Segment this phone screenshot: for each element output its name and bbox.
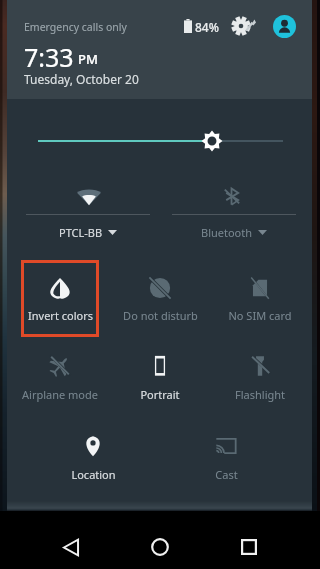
button[interactable] xyxy=(221,338,299,415)
button[interactable] xyxy=(54,418,132,495)
staticText: No SIM card xyxy=(228,308,292,323)
button[interactable]: Bluetooth xyxy=(172,175,296,243)
staticText: Do not disturb xyxy=(123,308,198,323)
staticText: Tuesday, October 20 xyxy=(24,71,139,87)
button[interactable]: Settings xyxy=(227,13,261,39)
staticText: 84% xyxy=(195,19,219,35)
staticText: PTCL-BB xyxy=(59,225,103,240)
button[interactable] xyxy=(121,260,199,337)
staticText: 7:33 xyxy=(24,40,74,74)
button[interactable] xyxy=(24,263,96,334)
button[interactable] xyxy=(187,418,265,495)
button[interactable]: PTCL-BB xyxy=(26,175,150,243)
button[interactable] xyxy=(121,338,199,415)
staticText: Airplane mode xyxy=(22,387,98,402)
staticText: Bluetooth xyxy=(201,225,253,240)
button[interactable] xyxy=(21,338,99,415)
button[interactable]: Brightness xyxy=(31,128,288,154)
staticText: Invert colors xyxy=(28,308,93,323)
staticText: Emergency calls only xyxy=(24,20,127,34)
staticText: Cast xyxy=(215,467,238,482)
staticText: PM xyxy=(78,50,98,68)
staticText: Flashlight xyxy=(235,387,285,402)
button[interactable]: Back xyxy=(45,511,97,563)
button[interactable]: User profile xyxy=(273,15,296,38)
button[interactable] xyxy=(221,260,299,337)
staticText: Location xyxy=(71,467,116,482)
staticText: Portrait xyxy=(140,387,180,402)
button[interactable]: Recent apps xyxy=(223,511,275,563)
button[interactable]: Home xyxy=(134,511,186,563)
